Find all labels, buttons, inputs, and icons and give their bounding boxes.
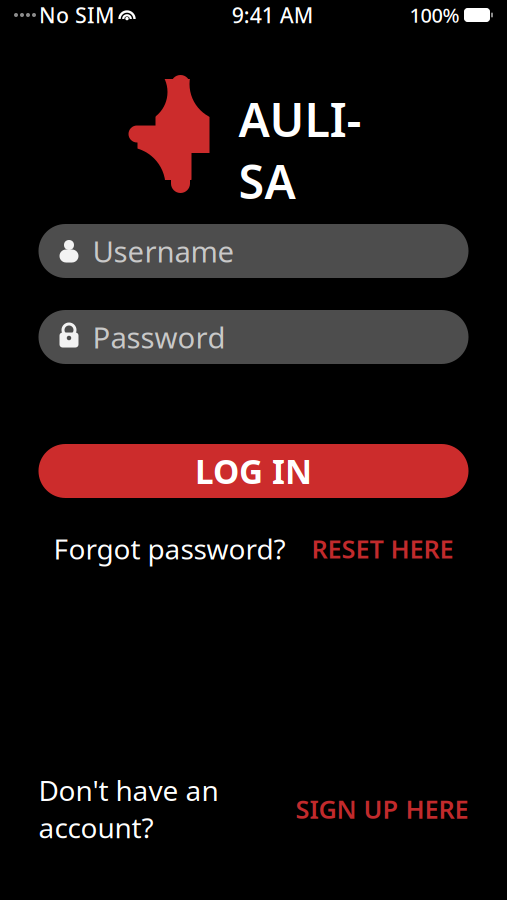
button[interactable]: Don't have an account? <box>38 772 218 846</box>
staticText: Forgot password? <box>53 530 285 567</box>
staticText: Don't have an account? <box>38 772 218 846</box>
staticText: LOG IN <box>195 449 312 493</box>
button[interactable]: LOG IN <box>38 444 468 498</box>
staticText: SIGN UP HERE <box>295 792 468 826</box>
button[interactable]: RESET HERE <box>311 532 453 565</box>
staticText: 100% <box>409 2 459 28</box>
button[interactable]: Forgot password? <box>53 530 285 567</box>
button[interactable]: Password <box>38 310 468 364</box>
button[interactable]: SIGN UP HERE <box>295 792 468 826</box>
staticText: RESET HERE <box>311 532 453 565</box>
staticText: 9:41 AM <box>232 1 314 29</box>
staticText: Username <box>92 231 234 270</box>
staticText: AULISA <box>238 88 361 212</box>
staticText: No SIM <box>39 1 115 29</box>
button[interactable]: Username <box>38 224 468 278</box>
staticText: Password <box>92 317 225 356</box>
